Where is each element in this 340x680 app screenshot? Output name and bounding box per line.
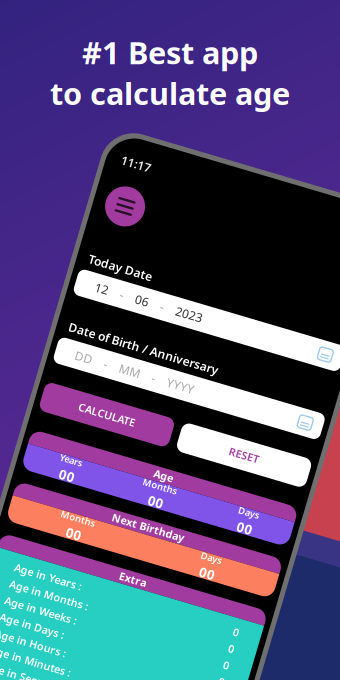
staticText: Next Birthday	[123, 522, 198, 536]
button[interactable]: CALCULATE	[22, 418, 157, 448]
staticText: RESET	[217, 426, 248, 440]
staticText: Age in Weeks :	[44, 632, 119, 646]
staticText: Date of Birth / Anniversary	[28, 351, 184, 367]
staticText: 2023	[126, 305, 154, 321]
staticText: Years	[56, 480, 80, 493]
staticText: -	[72, 376, 76, 392]
staticText: Days	[243, 480, 265, 493]
staticText: YYYY	[138, 376, 166, 392]
staticText: 0	[272, 632, 278, 646]
staticText: DD	[42, 376, 60, 392]
staticText: Age in Days :	[44, 649, 111, 663]
staticText: Today Date	[28, 280, 94, 296]
staticText: -	[122, 376, 126, 392]
staticText: 00	[246, 494, 262, 511]
staticText: 0	[272, 598, 278, 612]
staticText: 00	[222, 548, 238, 565]
staticText: 00	[60, 494, 76, 511]
staticText: Extra	[147, 576, 175, 590]
staticText: Months	[73, 534, 109, 547]
button[interactable]: DD	[16, 371, 306, 398]
staticText: Months	[143, 480, 179, 493]
staticText: to calculate age	[50, 73, 290, 113]
staticText: 00	[83, 548, 99, 565]
staticText: Age in Hours :	[44, 666, 118, 680]
staticText: CALCULATE	[60, 426, 119, 440]
staticText: MM	[88, 376, 110, 392]
staticText: Age	[151, 468, 171, 482]
button[interactable]: 12	[16, 300, 306, 327]
staticText: 0	[272, 615, 278, 629]
staticText: Days	[219, 534, 241, 547]
staticText: Age in Years :	[44, 598, 114, 612]
button[interactable]: RESET	[165, 418, 300, 448]
staticText: #1 Best app	[82, 32, 258, 73]
staticText: -	[110, 305, 114, 321]
staticText: 00	[153, 494, 169, 511]
staticText: 12	[42, 305, 56, 321]
staticText: Age in Months :	[44, 615, 126, 629]
